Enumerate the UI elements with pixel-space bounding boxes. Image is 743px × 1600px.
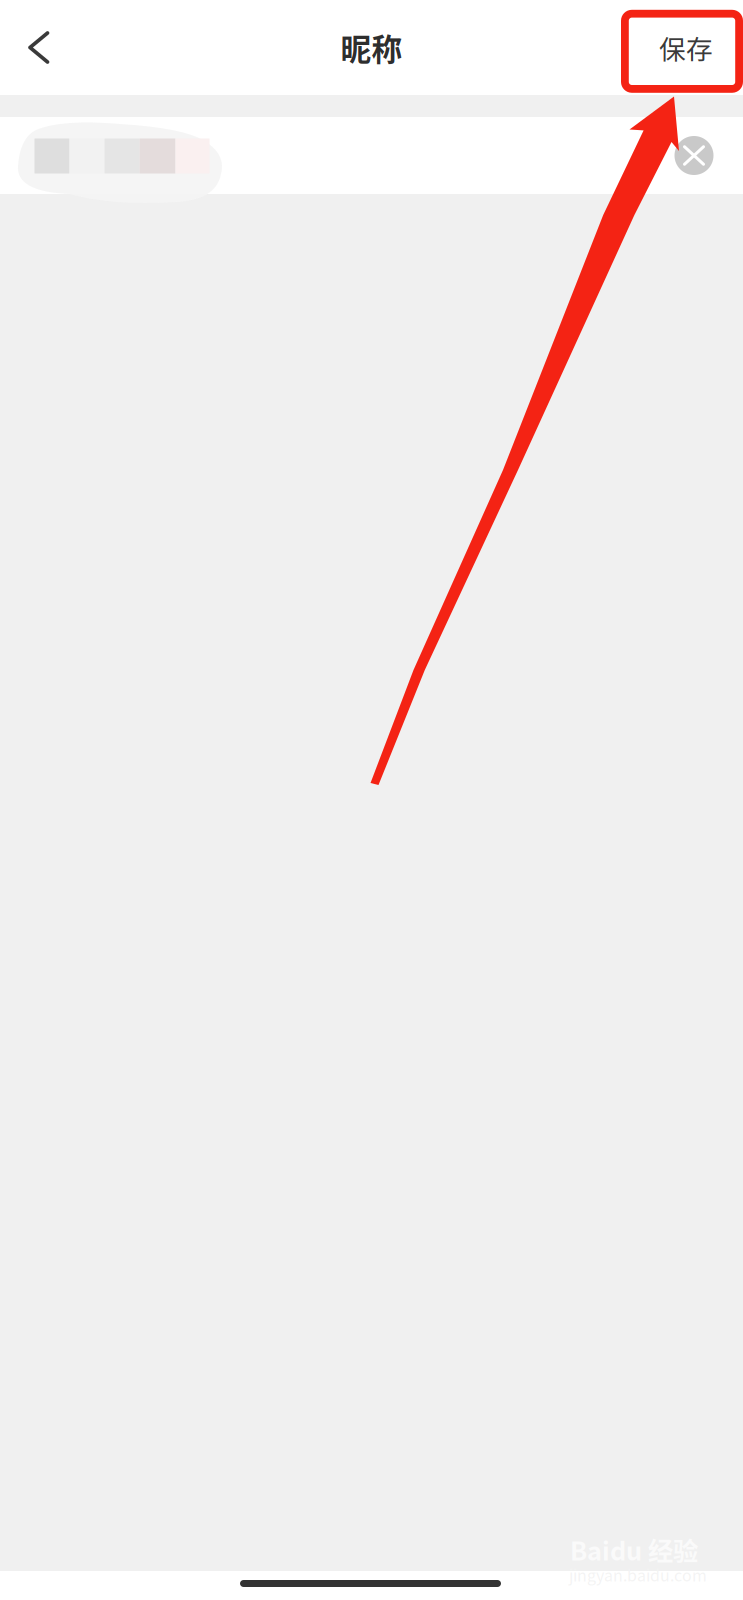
staticText: 昵称 xyxy=(340,25,402,70)
button[interactable]: 保存 xyxy=(623,0,743,95)
staticText: Baidu 经验 xyxy=(570,1531,698,1568)
staticText: jingyan.baidu.com xyxy=(569,1563,707,1586)
staticText: 保存 xyxy=(659,28,713,67)
button[interactable]: Back xyxy=(0,0,92,95)
button[interactable]: Clear text xyxy=(674,136,713,175)
